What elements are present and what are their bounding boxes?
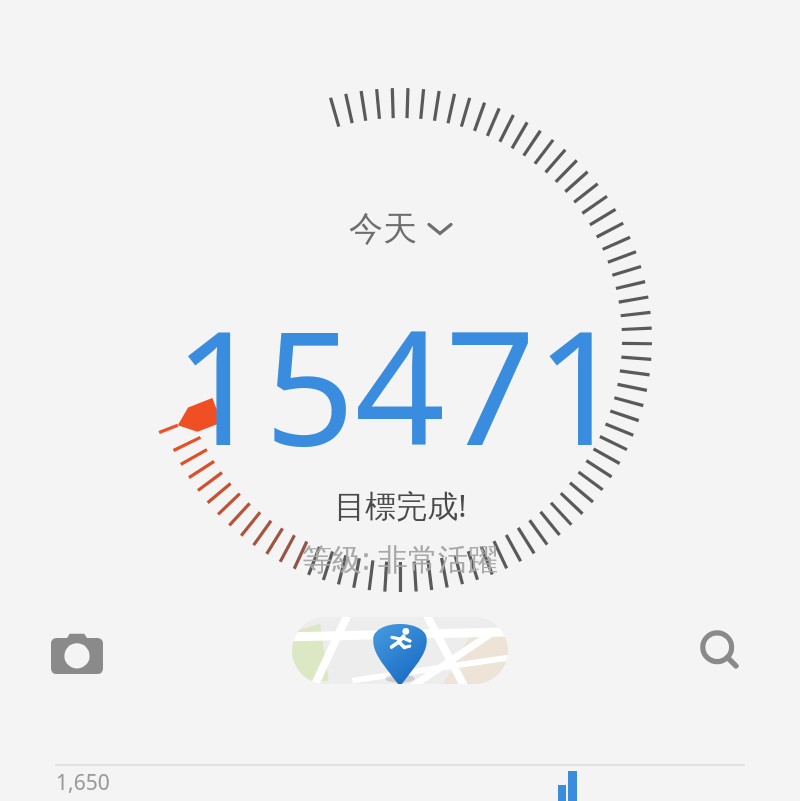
staticText: 目標完成!	[334, 484, 467, 526]
staticText: 今天	[349, 207, 417, 250]
button[interactable]: 今天	[339, 203, 461, 254]
staticText: 15471	[174, 276, 626, 491]
staticText: 等級: 非常活躍	[302, 538, 498, 579]
button[interactable]: Camera	[37, 613, 117, 693]
staticText: 1,650	[56, 768, 110, 797]
button[interactable]: Start run tracking	[292, 617, 508, 684]
button[interactable]: Search	[682, 612, 762, 692]
